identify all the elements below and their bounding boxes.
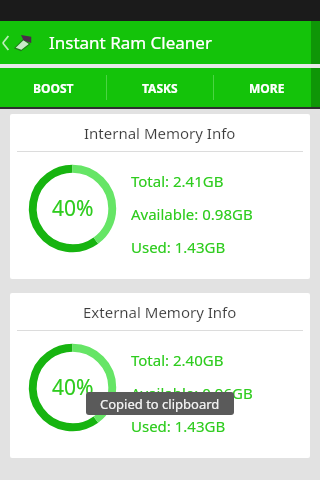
- staticText: 40%: [52, 373, 94, 402]
- staticText: Available: 0.96GB: [131, 383, 253, 403]
- staticText: BOOST: [33, 80, 74, 96]
- staticText: Internal Memory Info: [84, 123, 236, 143]
- staticText: External Memory Info: [83, 302, 237, 322]
- staticText: Copied to clipboard: [100, 395, 220, 413]
- button[interactable]: MORE: [214, 68, 320, 107]
- staticText: Available: 0.98GB: [131, 204, 253, 224]
- button[interactable]: BOOST: [0, 68, 106, 107]
- staticText: Total: 2.40GB: [131, 350, 224, 370]
- button[interactable]: TASKS: [107, 68, 213, 107]
- button[interactable]: Internal Memory Info: [10, 114, 310, 279]
- staticText: Used: 1.43GB: [131, 416, 226, 436]
- button[interactable]: Navigate up: [0, 21, 40, 64]
- button[interactable]: External Memory Info: [10, 293, 310, 458]
- staticText: MORE: [249, 80, 285, 96]
- staticText: Used: 1.43GB: [131, 237, 226, 257]
- staticText: Instant Ram Cleaner: [49, 31, 212, 54]
- staticText: TASKS: [142, 80, 178, 96]
- staticText: 40%: [52, 194, 94, 223]
- staticText: Total: 2.41GB: [131, 171, 224, 191]
